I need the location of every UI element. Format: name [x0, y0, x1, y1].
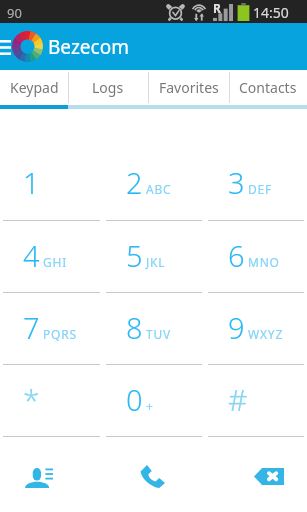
staticText: JKL — [146, 254, 166, 270]
button[interactable]: Contacts — [229, 70, 307, 109]
staticText: Logs — [92, 78, 124, 97]
button[interactable]: Call — [128, 454, 179, 502]
button[interactable]: Backspace — [244, 454, 295, 502]
staticText: ABC — [146, 181, 172, 197]
button[interactable]: 8 — [103, 293, 205, 365]
staticText: GHI — [43, 254, 68, 270]
staticText: R — [213, 0, 221, 16]
button[interactable]: 0 — [103, 365, 205, 437]
button[interactable]: # — [205, 365, 307, 437]
staticText: 6 — [228, 236, 245, 275]
button[interactable]: 1 — [0, 148, 103, 221]
staticText: 0 — [126, 380, 143, 419]
staticText: 14:50 — [253, 3, 289, 22]
staticText: # — [228, 379, 248, 420]
staticText: Favorites — [159, 78, 219, 97]
staticText: DEF — [248, 181, 273, 197]
button[interactable]: * — [0, 365, 103, 437]
staticText: 2 — [126, 163, 143, 202]
staticText: Contacts — [239, 78, 297, 97]
staticText: * — [23, 379, 40, 420]
button[interactable]: 6 — [205, 221, 307, 293]
staticText: Keypad — [10, 78, 59, 97]
staticText: 1 — [23, 163, 40, 202]
button[interactable]: Logs — [68, 70, 148, 109]
button[interactable]: 5 — [103, 221, 205, 293]
button[interactable]: 7 — [0, 293, 103, 365]
staticText: 4 — [23, 236, 40, 275]
staticText: Bezecom — [48, 34, 129, 60]
button[interactable]: 9 — [205, 293, 307, 365]
button[interactable]: 2 — [103, 148, 205, 221]
staticText: 5 — [126, 236, 143, 275]
button[interactable]: 3 — [205, 148, 307, 221]
button[interactable]: Keypad — [0, 70, 68, 109]
staticText: WXYZ — [248, 326, 284, 342]
staticText: PQRS — [43, 326, 77, 342]
staticText: + — [146, 398, 154, 414]
button[interactable]: Open navigation menu — [0, 29, 14, 65]
button[interactable]: Contacts — [14, 454, 65, 502]
staticText: TUV — [146, 326, 172, 342]
staticText: 3 — [228, 163, 245, 202]
staticText: 90 — [7, 4, 22, 22]
staticText: 9 — [228, 308, 245, 347]
staticText: 8 — [126, 308, 143, 347]
button[interactable]: Favorites — [148, 70, 229, 109]
button[interactable]: 4 — [0, 221, 103, 293]
staticText: MNO — [248, 254, 280, 270]
staticText: 7 — [23, 308, 40, 347]
